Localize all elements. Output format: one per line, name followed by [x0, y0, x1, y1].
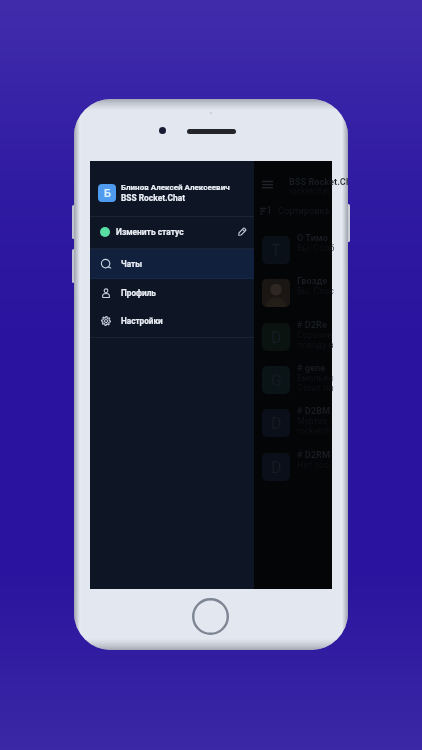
staticText: # D2Re [297, 319, 327, 330]
staticText: D [271, 458, 282, 477]
button[interactable]: D [256, 319, 332, 362]
staticText: Стоит ли [297, 383, 334, 393]
staticText: # D2BM [297, 405, 330, 416]
button[interactable]: D [256, 405, 332, 448]
staticText: Изменить статус [116, 227, 184, 237]
staticText: D [271, 414, 282, 433]
staticText: BSS Rocket.Chat [289, 176, 348, 187]
button[interactable]: D [256, 449, 332, 492]
other: Open navigation menu [262, 180, 273, 191]
staticText: Гвозде [297, 275, 328, 286]
staticText: Вы: Спас [297, 286, 334, 296]
staticText: Б [104, 187, 111, 200]
staticText: О Тимо [297, 232, 329, 243]
button[interactable]: Профиль [90, 279, 254, 307]
staticText: Вы: Сооб [297, 243, 335, 253]
staticText: Настройки [121, 316, 163, 326]
staticText: BSS Rocket.Chat [121, 193, 185, 203]
staticText: поводу в [297, 340, 334, 350]
staticText: # D2RM [297, 449, 330, 460]
staticText: Сортировка [278, 205, 330, 216]
staticText: D [271, 328, 282, 347]
staticText: rocketch [297, 426, 331, 436]
staticText: G [271, 371, 282, 390]
staticText: Чаты [121, 259, 142, 269]
staticText: Сорокин [297, 330, 333, 340]
staticText: Блинов Алексей Алексеевич [121, 183, 230, 192]
button[interactable]: Чаты [90, 250, 254, 278]
staticText: Муртаз [297, 416, 327, 426]
staticText: Т [271, 241, 281, 260]
button[interactable]: Б [90, 176, 254, 210]
staticText: # gene [297, 362, 326, 373]
button[interactable]: Изменить статус [90, 218, 254, 246]
button[interactable]: G [256, 362, 332, 405]
staticText: rocketchat [289, 186, 330, 196]
staticText: Нет соо [297, 460, 329, 470]
other: Sort [260, 206, 272, 218]
staticText: Профиль [121, 288, 156, 298]
other: Edit status [236, 226, 248, 238]
button[interactable]: Настройки [90, 307, 254, 335]
button[interactable]: Т [256, 232, 332, 275]
staticText: Емельян [297, 373, 333, 383]
button[interactable]: Гвозде [256, 275, 332, 318]
